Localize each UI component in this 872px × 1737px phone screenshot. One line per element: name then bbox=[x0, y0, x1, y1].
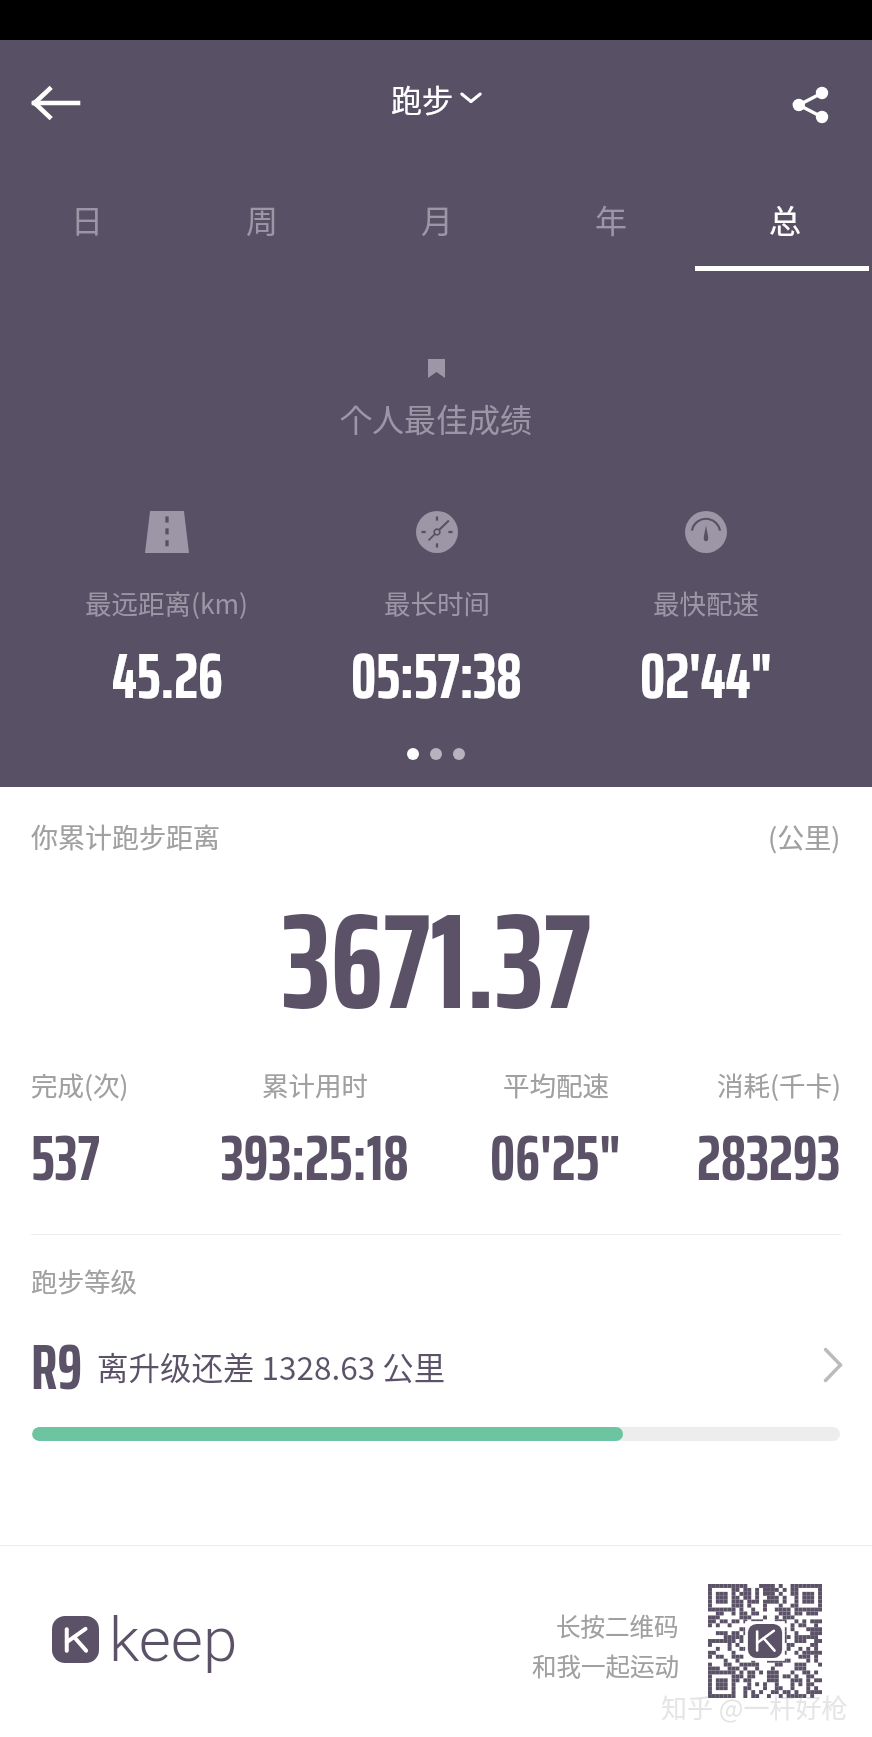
button[interactable]: 周 bbox=[175, 193, 350, 271]
staticText: 跑步 bbox=[391, 76, 453, 120]
staticText: 最长时间 bbox=[384, 583, 490, 621]
staticText: 和我一起运动 bbox=[532, 1648, 679, 1683]
staticText: 完成(次) bbox=[31, 1065, 129, 1103]
staticText: 年 bbox=[595, 196, 628, 242]
staticText: 累计用时 bbox=[262, 1065, 368, 1103]
button[interactable]: 日 bbox=[0, 193, 175, 271]
staticText: 离升级还差 1328.63 公里 bbox=[97, 1343, 446, 1389]
staticText: 537 bbox=[31, 1108, 100, 1207]
staticText: 知乎 @一杆好枪 bbox=[661, 1688, 848, 1726]
staticText: 最远距离(km) bbox=[85, 583, 249, 621]
staticText: 总 bbox=[769, 196, 802, 242]
staticText: 06'25" bbox=[490, 1108, 621, 1207]
staticText: (公里) bbox=[768, 817, 841, 856]
staticText: 平均配速 bbox=[503, 1065, 609, 1103]
staticText: 消耗(千卡) bbox=[717, 1065, 841, 1103]
button[interactable]: 年 bbox=[524, 193, 698, 271]
button[interactable]: 月 bbox=[350, 193, 524, 271]
staticText: 05:57:38 bbox=[351, 626, 522, 725]
button[interactable]: Share bbox=[770, 65, 850, 145]
button[interactable]: Back bbox=[16, 63, 96, 143]
staticText: 3671.37 bbox=[282, 856, 591, 1067]
button[interactable]: 总 bbox=[698, 193, 872, 271]
staticText: 283293 bbox=[697, 1108, 841, 1207]
staticText: 周 bbox=[246, 196, 279, 242]
staticText: 最快配速 bbox=[653, 583, 759, 621]
staticText: 长按二维码 bbox=[556, 1608, 679, 1643]
staticText: R9 bbox=[31, 1317, 83, 1397]
staticText: 月 bbox=[421, 196, 454, 242]
staticText: 跑步等级 bbox=[31, 1261, 137, 1299]
staticText: 393:25:18 bbox=[221, 1108, 409, 1207]
staticText: 你累计跑步距离 bbox=[31, 817, 220, 856]
staticText: 02'44" bbox=[640, 626, 772, 725]
staticText: 45.26 bbox=[112, 626, 223, 725]
button[interactable]: 跑步 bbox=[391, 76, 482, 120]
staticText: 个人最佳成绩 bbox=[340, 395, 533, 441]
button[interactable]: R9 bbox=[0, 1318, 872, 1398]
staticText: keep bbox=[109, 1603, 238, 1676]
staticText: 日 bbox=[71, 196, 104, 242]
